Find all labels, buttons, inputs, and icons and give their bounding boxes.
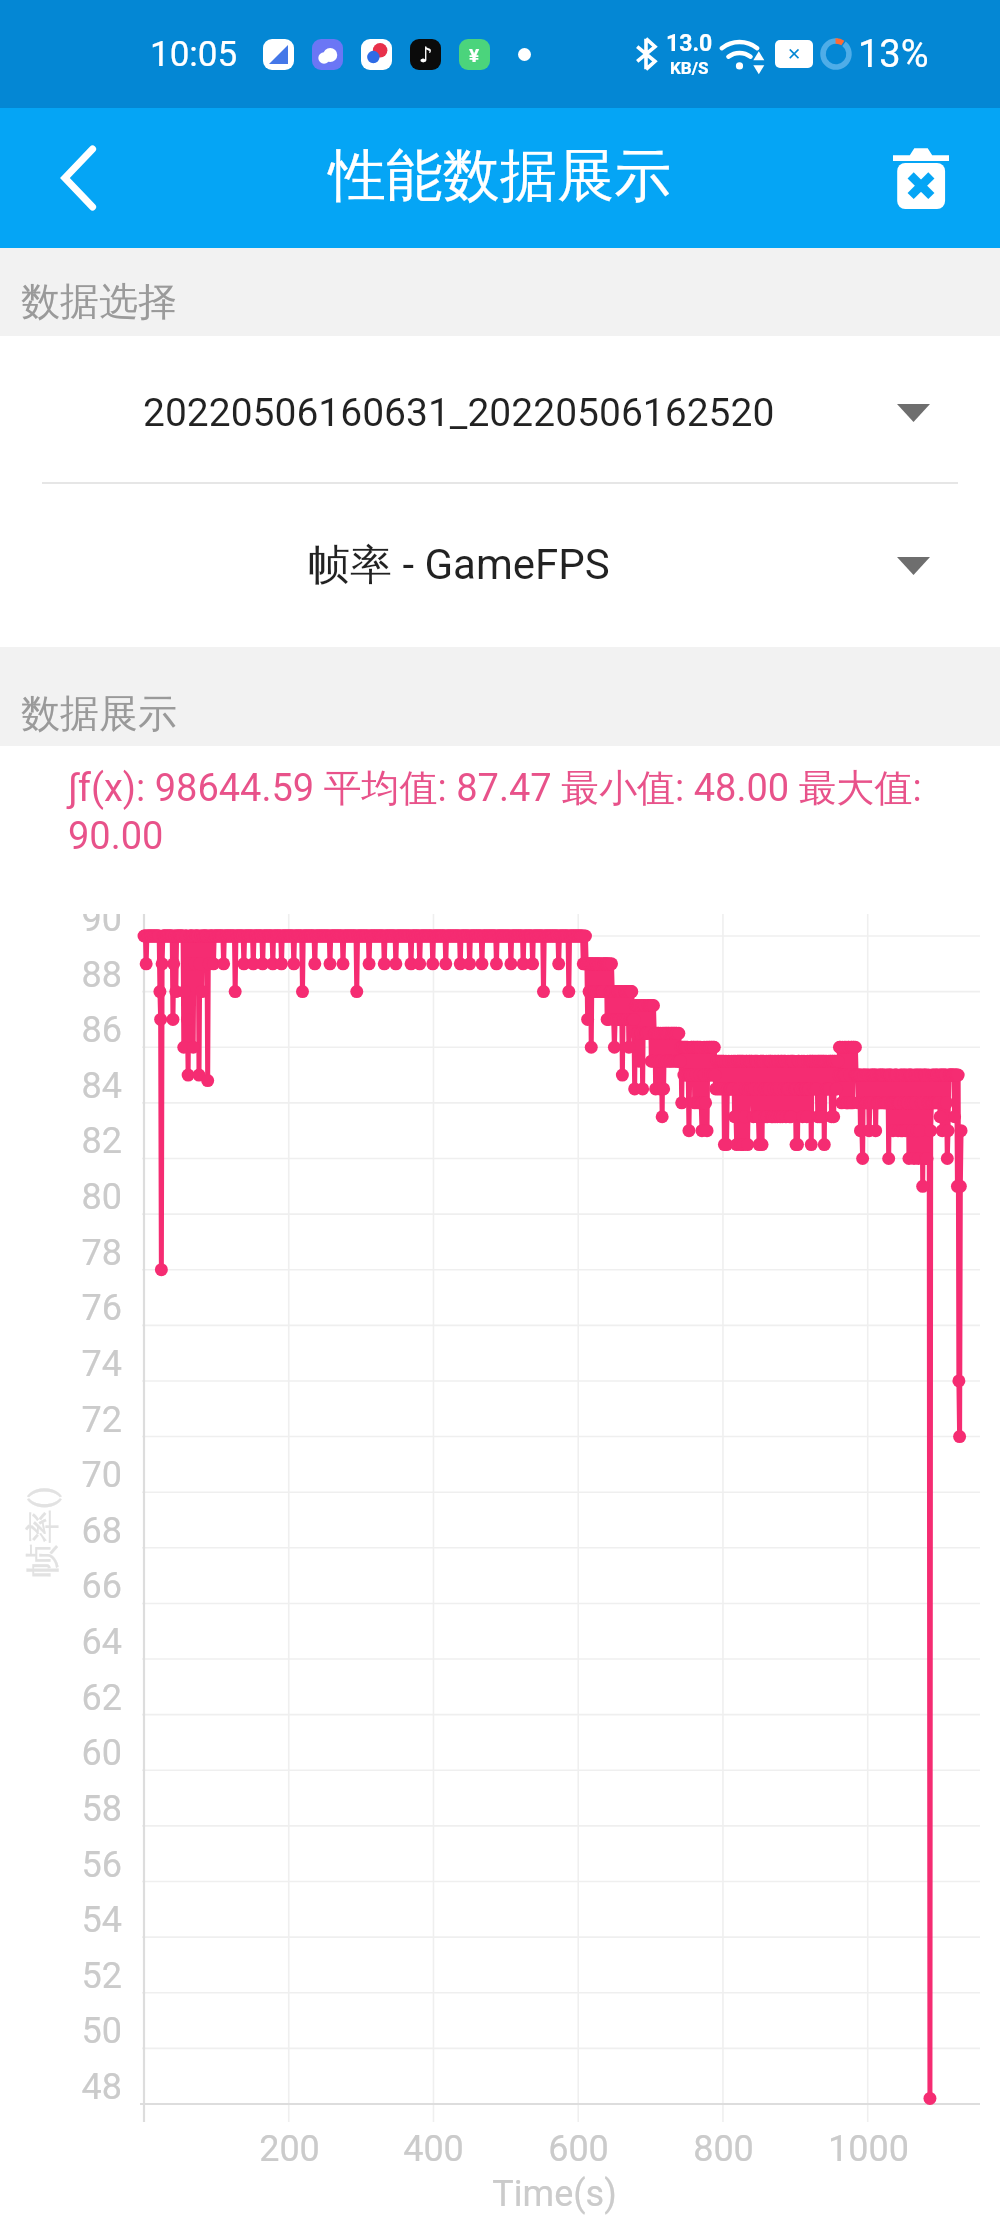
staticText: 13.0 xyxy=(666,30,713,57)
staticText: 62 xyxy=(81,1677,122,1719)
staticText: 80 xyxy=(81,1176,122,1218)
staticText: 54 xyxy=(81,1899,122,1941)
staticText: 82 xyxy=(81,1120,122,1162)
staticText: ∫f(x): 98644.59 平均值: 87.47 最小值: 48.00 最大… xyxy=(68,764,972,858)
staticText: 68 xyxy=(81,1510,122,1552)
staticText: 13% xyxy=(858,32,929,77)
staticText: 56 xyxy=(81,1844,122,1886)
button[interactable]: Delete xyxy=(872,129,970,227)
button[interactable]: 20220506160631_20220506162520 xyxy=(0,336,1000,482)
staticText: 600 xyxy=(548,2128,609,2170)
staticText: ♪ xyxy=(419,43,433,67)
staticText: 48 xyxy=(81,2066,122,2108)
staticText: 1000 xyxy=(828,2128,909,2170)
staticText: 72 xyxy=(81,1399,122,1441)
staticText: 88 xyxy=(81,954,122,996)
staticText: 800 xyxy=(693,2128,754,2170)
staticText: 性能数据展示 xyxy=(329,140,671,212)
staticText: 200 xyxy=(259,2128,320,2170)
button[interactable]: 帧率 - GameFPS xyxy=(0,484,1000,647)
staticText: 66 xyxy=(81,1565,122,1607)
staticText: 64 xyxy=(81,1621,122,1663)
staticText: 58 xyxy=(81,1788,122,1830)
staticText: Time(s) xyxy=(492,2173,617,2215)
staticText: 50 xyxy=(81,2010,122,2052)
staticText: 数据展示 xyxy=(21,689,177,738)
staticText: 70 xyxy=(81,1454,122,1496)
staticText: 400 xyxy=(403,2128,464,2170)
staticText: 76 xyxy=(81,1287,122,1329)
staticText: 60 xyxy=(81,1732,122,1774)
staticText: ✕ xyxy=(787,44,802,64)
staticText: 74 xyxy=(81,1343,122,1385)
staticText: 52 xyxy=(81,1955,122,1997)
staticText: 数据选择 xyxy=(21,277,177,326)
staticText: KB/S xyxy=(670,58,709,78)
staticText: 20220506160631_20220506162520 xyxy=(143,390,775,436)
staticText: 10:05 xyxy=(150,34,238,75)
staticText: 90 xyxy=(81,914,122,940)
staticText: ¥ xyxy=(469,44,480,66)
staticText: 86 xyxy=(81,1009,122,1051)
staticText: 帧率() xyxy=(20,1485,63,1577)
staticText: 78 xyxy=(81,1232,122,1274)
staticText: 帧率 - GameFPS xyxy=(308,539,610,592)
staticText: 84 xyxy=(81,1065,122,1107)
button[interactable]: Back xyxy=(34,132,126,224)
